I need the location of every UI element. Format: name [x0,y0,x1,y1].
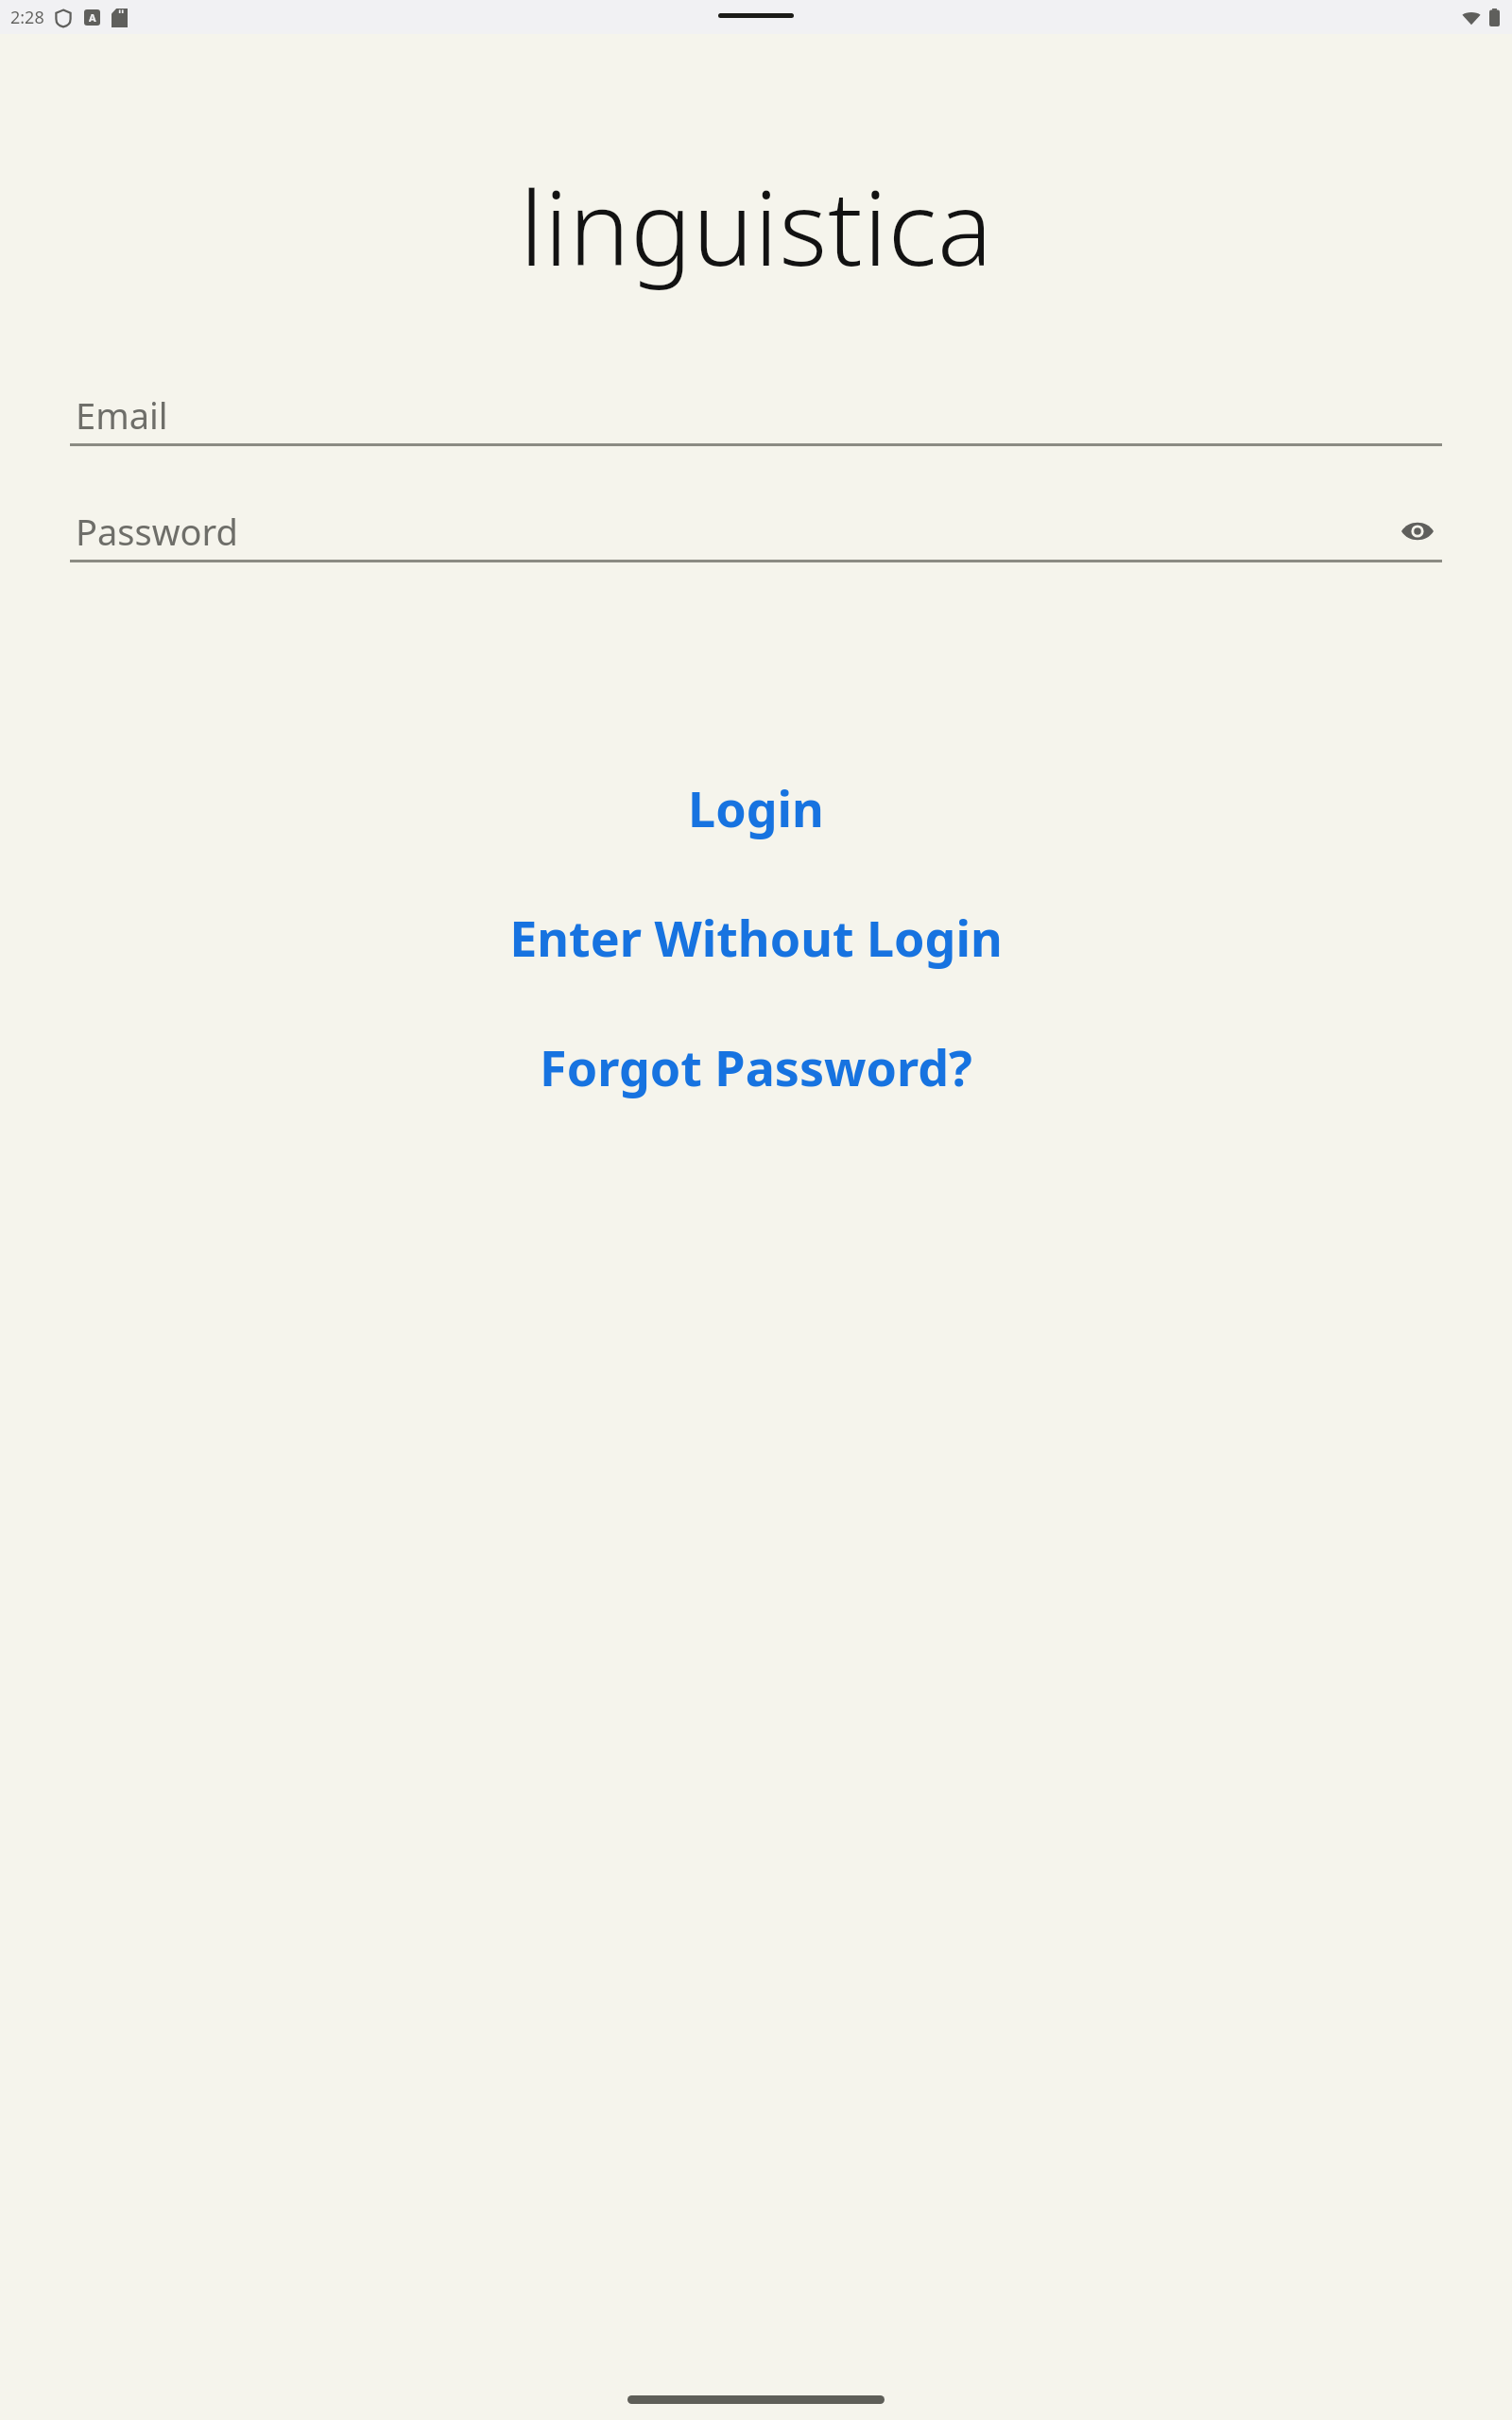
button[interactable]: Login [0,769,1512,847]
button[interactable]: Forgot Password? [0,1028,1512,1106]
button[interactable]: Show password [1393,507,1442,556]
staticText: linguistica [520,157,993,296]
button[interactable]: Email [70,387,1442,446]
staticText: Password [76,507,238,556]
staticText: Login [688,774,824,841]
staticText: 2:28 [10,6,44,29]
staticText: Forgot Password? [540,1033,972,1100]
staticText: Enter Without Login [509,904,1003,971]
staticText: Email [76,390,168,440]
button[interactable]: Enter Without Login [0,898,1512,977]
button[interactable]: Password [70,503,1442,562]
staticText: A [89,10,96,25]
